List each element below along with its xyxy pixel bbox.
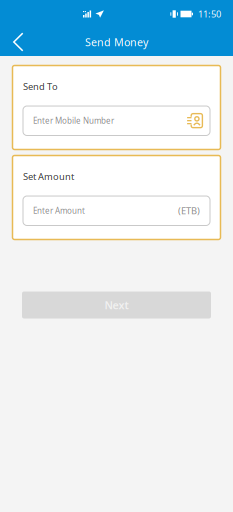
- staticText: Set Amount: [23, 170, 74, 183]
- staticText: Next: [104, 298, 128, 312]
- staticText: Enter Mobile Number: [33, 115, 114, 126]
- staticText: 11:50: [198, 8, 221, 20]
- staticText: Send Money: [85, 35, 148, 49]
- staticText: (ETB): [178, 205, 200, 217]
- staticText: Enter Amount: [33, 205, 85, 216]
- button[interactable]: Choose contact: [184, 110, 205, 131]
- button[interactable]: Back: [0, 28, 31, 56]
- staticText: Send To: [23, 80, 58, 93]
